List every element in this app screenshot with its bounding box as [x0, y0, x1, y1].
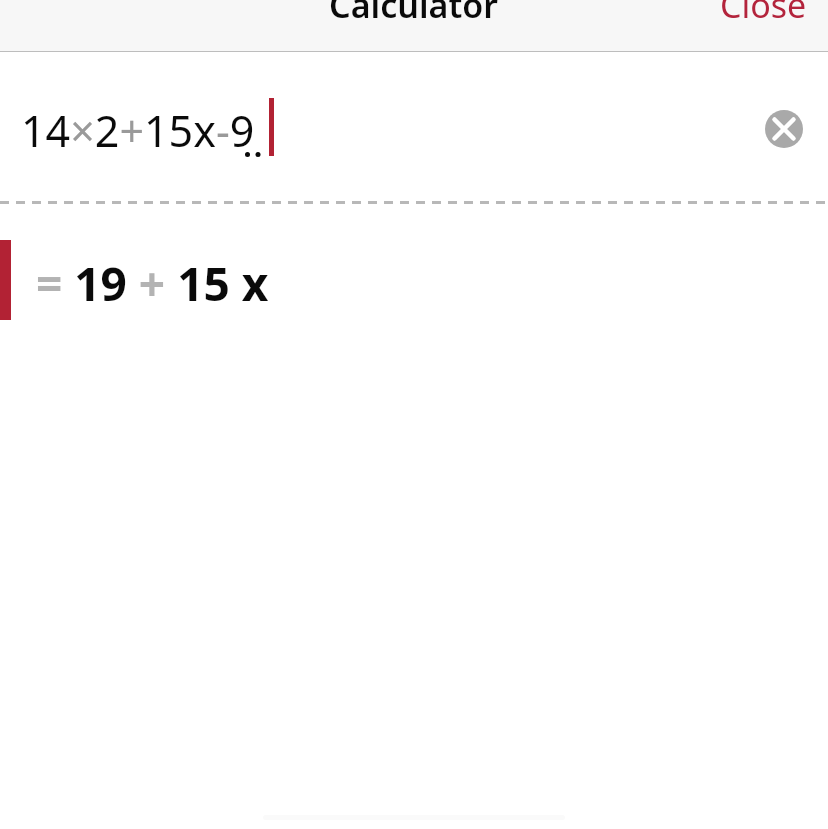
- staticText: 14×2+15x-9: [21, 101, 255, 160]
- button[interactable]: = 19 + 15 x: [0, 240, 828, 320]
- button[interactable]: Close: [708, 0, 828, 28]
- staticText: = 19 + 15 x: [36, 252, 269, 315]
- staticText: Calculator: [329, 0, 499, 28]
- button[interactable]: Clear expression: [765, 110, 803, 148]
- staticText: Close: [720, 0, 807, 28]
